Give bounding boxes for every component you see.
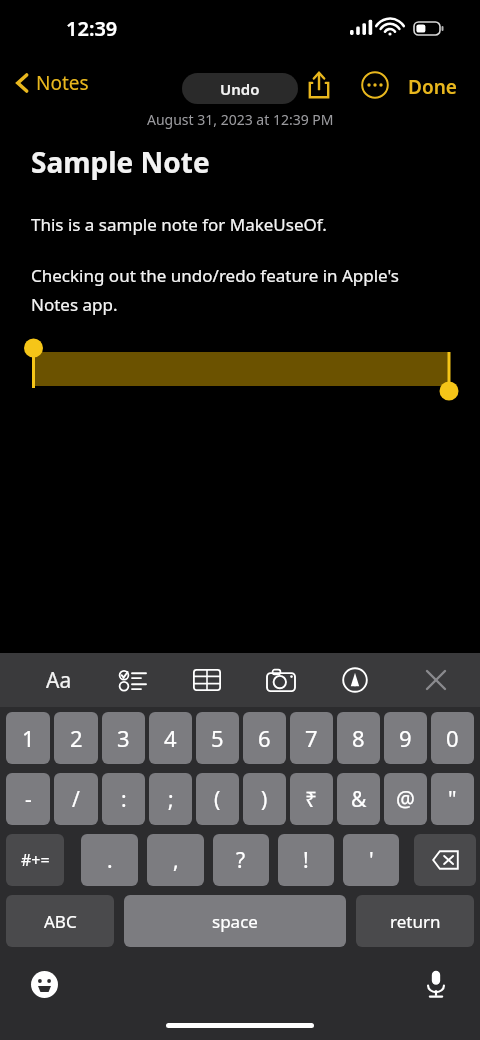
button[interactable]: Close keyboard [416, 660, 456, 700]
staticText: 3 [117, 723, 130, 753]
button[interactable]: More options [356, 66, 394, 104]
button[interactable]: Undo [182, 73, 298, 104]
button[interactable]: Text format [38, 659, 80, 701]
staticText: Done [408, 74, 457, 100]
button[interactable]: Emoji [22, 962, 66, 1006]
staticText: This is a sample note for MakeUseOf. [31, 213, 327, 236]
button[interactable]: Camera [260, 659, 302, 701]
button[interactable]: ! [278, 834, 334, 886]
button[interactable]: ) [243, 773, 286, 825]
button[interactable]: ( [196, 773, 239, 825]
staticText: , [173, 846, 179, 875]
button[interactable]: Table [186, 659, 228, 701]
staticText: : [121, 785, 127, 814]
staticText: space [212, 910, 258, 933]
staticText: 5 [211, 723, 224, 753]
staticText: 6 [258, 723, 271, 753]
button[interactable]: #+= [6, 834, 64, 886]
staticText: Checking out the undo/redo feature in Ap… [31, 264, 399, 316]
staticText: ABC [44, 910, 77, 933]
button[interactable]: Backspace [414, 834, 476, 886]
staticText: 9 [399, 723, 412, 753]
staticText: ; [168, 785, 174, 814]
button[interactable]: . [81, 834, 138, 886]
button[interactable]: Checklist [112, 659, 154, 701]
staticText: - [25, 785, 32, 814]
staticText: 7 [305, 723, 318, 753]
staticText: 0 [446, 723, 459, 753]
staticText: #+= [21, 849, 50, 871]
staticText: ₹ [305, 785, 318, 814]
staticText: Aa [46, 666, 72, 695]
button[interactable]: 4 [149, 712, 192, 764]
staticText: Sample Note [31, 143, 210, 181]
button[interactable]: ABC [6, 895, 114, 947]
button[interactable]: Markup [334, 659, 376, 701]
button[interactable]: 3 [102, 712, 145, 764]
button[interactable]: Notes [10, 66, 95, 100]
button[interactable]: 8 [337, 712, 380, 764]
staticText: 2 [70, 723, 83, 753]
staticText: ) [261, 785, 268, 814]
staticText: & [351, 785, 367, 814]
staticText: ? [236, 846, 246, 875]
button[interactable]: ' [343, 834, 399, 886]
button[interactable]: / [54, 773, 98, 825]
staticText: ! [303, 846, 309, 875]
staticText: ' [369, 846, 374, 875]
button[interactable]: Share [300, 66, 338, 104]
button[interactable]: 1 [6, 712, 50, 764]
button[interactable]: 7 [290, 712, 333, 764]
staticText: Undo [220, 79, 260, 99]
staticText: " [448, 785, 457, 814]
button[interactable]: ₹ [290, 773, 333, 825]
button[interactable]: ; [149, 773, 192, 825]
staticText: . [107, 846, 113, 875]
button[interactable]: Dictate [414, 962, 458, 1006]
button[interactable]: 5 [196, 712, 239, 764]
staticText: @ [396, 785, 415, 814]
button[interactable]: 6 [243, 712, 286, 764]
button[interactable]: 9 [384, 712, 427, 764]
button[interactable]: & [337, 773, 380, 825]
button[interactable]: , [147, 834, 204, 886]
button[interactable]: return [356, 895, 474, 947]
staticText: Notes [36, 70, 89, 96]
staticText: 1 [22, 723, 35, 753]
staticText: 12:39 [66, 15, 118, 42]
button[interactable]: : [102, 773, 145, 825]
staticText: return [390, 910, 441, 933]
button[interactable]: 2 [54, 712, 98, 764]
button[interactable]: space [124, 895, 346, 947]
button[interactable]: " [431, 773, 474, 825]
button[interactable]: - [6, 773, 50, 825]
button[interactable]: 0 [431, 712, 474, 764]
staticText: ( [214, 785, 221, 814]
staticText: August 31, 2023 at 12:39 PM [147, 110, 334, 129]
button[interactable]: Done [402, 70, 463, 104]
button[interactable]: @ [384, 773, 427, 825]
staticText: 4 [164, 723, 177, 753]
staticText: / [72, 785, 80, 814]
staticText: 8 [352, 723, 365, 753]
button[interactable]: ? [213, 834, 269, 886]
